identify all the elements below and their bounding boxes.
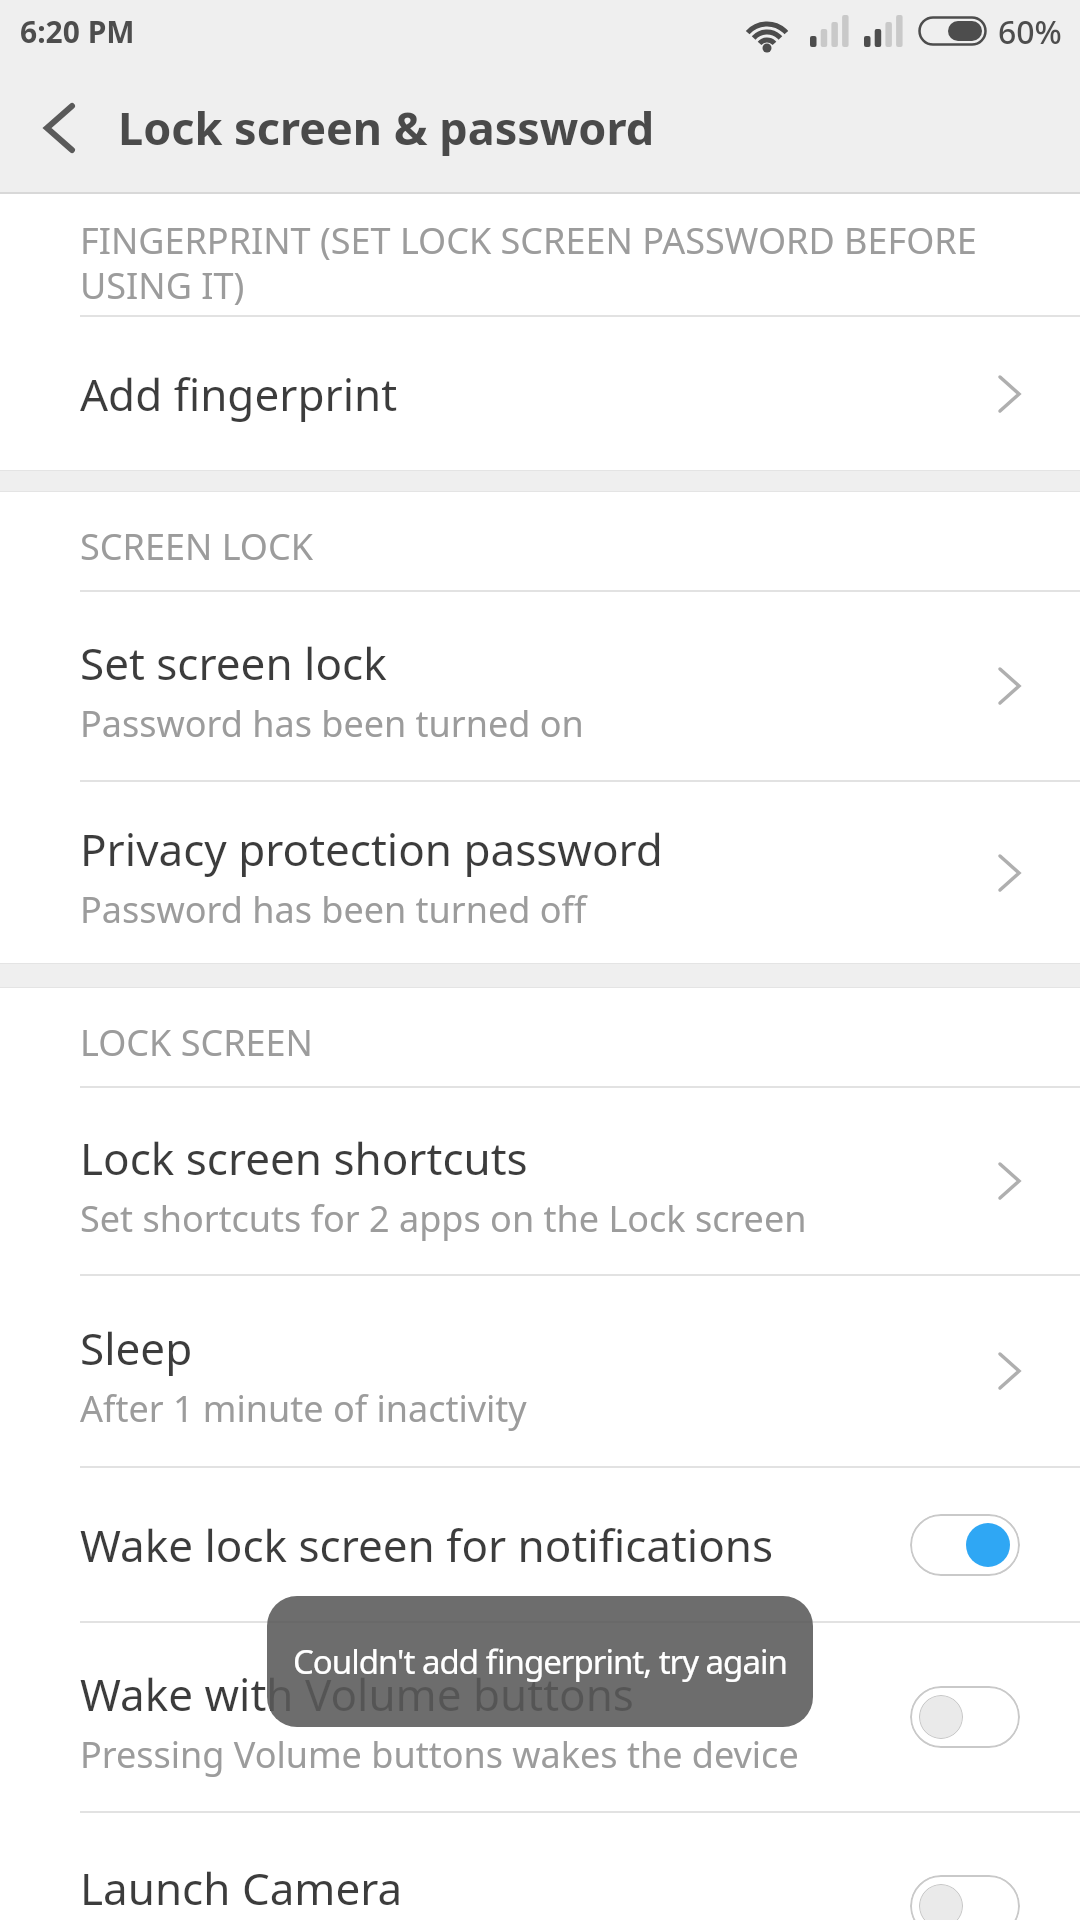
staticText: Add fingerprint: [80, 364, 398, 424]
button[interactable]: [910, 1686, 1020, 1748]
button[interactable]: Lock screen & password: [38, 97, 655, 158]
staticText: 6:20 PM: [20, 11, 135, 52]
staticText: Couldn't add fingerprint, try again: [293, 1639, 787, 1684]
staticText: Launch Camera: [80, 1858, 403, 1918]
staticText: SCREEN LOCK: [80, 522, 313, 571]
staticText: Pressing Volume buttons wakes the device: [80, 1730, 799, 1779]
button[interactable]: Add fingerprint: [0, 317, 1080, 470]
button[interactable]: Lock screen shortcuts: [0, 1088, 1080, 1274]
staticText: Set shortcuts for 2 apps on the Lock scr…: [80, 1194, 807, 1243]
staticText: After 1 minute of inactivity: [80, 1384, 527, 1433]
staticText: Wake lock screen for notifications: [80, 1515, 774, 1575]
staticText: Wake with Volume buttons: [80, 1664, 634, 1724]
staticText: Sleep: [80, 1318, 193, 1378]
button[interactable]: Set screen lock: [0, 592, 1080, 780]
button[interactable]: Wake with Volume buttons: [0, 1623, 1080, 1811]
button[interactable]: Wake lock screen for notifications: [0, 1468, 1080, 1621]
button[interactable]: Launch Camera: [0, 1813, 1080, 1916]
staticText: Lock screen shortcuts: [80, 1128, 528, 1188]
staticText: Set screen lock: [80, 633, 387, 693]
staticText: LOCK SCREEN: [80, 1018, 313, 1067]
button[interactable]: Privacy protection password: [0, 782, 1080, 963]
staticText: Password has been turned on: [80, 699, 584, 748]
staticText: Password has been turned off: [80, 885, 587, 934]
button[interactable]: [910, 1875, 1020, 1920]
staticText: FINGERPRINT (SET LOCK SCREEN PASSWORD BE…: [80, 216, 977, 310]
staticText: Privacy protection password: [80, 819, 663, 879]
staticText: 60%: [998, 10, 1062, 52]
button[interactable]: Sleep: [0, 1276, 1080, 1466]
button[interactable]: [910, 1514, 1020, 1576]
staticText: Lock screen & password: [118, 97, 655, 158]
